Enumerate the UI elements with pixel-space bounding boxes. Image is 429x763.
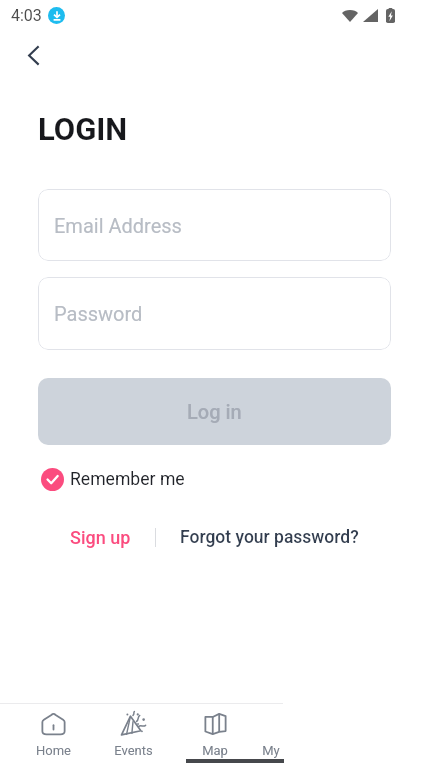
staticText: Map — [202, 743, 228, 758]
staticText: Forgot your password? — [180, 527, 359, 548]
button[interactable]: Map — [175, 703, 255, 763]
staticText: Email Address — [54, 214, 182, 237]
button[interactable]: Forgot your password? — [175, 527, 364, 548]
staticText: Home — [36, 743, 71, 758]
button[interactable]: Remember me — [41, 466, 185, 492]
button[interactable]: Email Address — [38, 189, 391, 261]
button[interactable]: Back — [12, 34, 54, 76]
staticText: Events — [114, 743, 153, 758]
button[interactable]: Home — [13, 703, 93, 763]
staticText: My — [262, 743, 280, 758]
button[interactable]: Password — [38, 277, 391, 350]
staticText: Log in — [187, 400, 242, 423]
button[interactable]: My — [231, 703, 311, 763]
button[interactable]: Events — [93, 703, 173, 763]
staticText: Remember me — [70, 469, 185, 490]
staticText: LOGIN — [38, 111, 128, 147]
button[interactable]: Sign up — [65, 527, 136, 548]
button[interactable]: Log in — [38, 378, 391, 445]
staticText: Password — [54, 302, 143, 325]
staticText: Sign up — [70, 527, 131, 548]
staticText: 4:03 — [11, 6, 42, 25]
